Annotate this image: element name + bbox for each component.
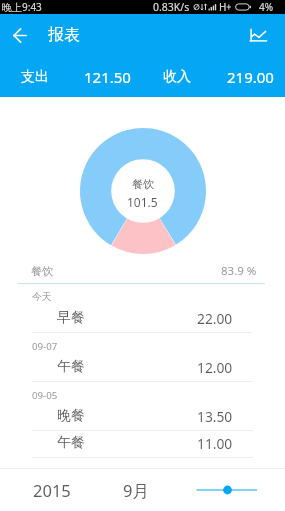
button[interactable]: 2015 [0,469,103,511]
staticText: 83.9 % [221,263,257,279]
button[interactable]: 09-07 [32,333,285,355]
staticText: 今天 [32,291,52,303]
button[interactable]: 支出 [0,56,142,97]
button[interactable]: 午餐 [0,355,285,382]
button[interactable]: Charts [230,14,285,56]
button[interactable]: 今天 [32,284,285,306]
button[interactable]: 晚餐 [0,404,285,431]
staticText: 早餐 [57,309,85,326]
button[interactable]: 收入 [142,56,285,97]
staticText: 219.00 [227,67,274,87]
button[interactable]: Adjust range [169,469,285,511]
button[interactable]: 9月 [103,469,169,511]
staticText: 9月 [123,479,149,502]
button[interactable]: 午餐 [0,431,285,458]
staticText: H [219,0,227,14]
staticText: 支出 [21,68,49,86]
staticText: 午餐 [57,358,85,375]
button[interactable]: 早餐 [0,306,285,333]
staticText: 晚上9:43 [2,0,42,14]
staticText: 午餐 [57,434,85,451]
button[interactable]: 09-05 [32,382,285,404]
staticText: 收入 [163,68,191,86]
button[interactable]: Back [0,14,39,56]
staticText: 22.00 [197,309,233,328]
staticText: 晚餐 [57,407,85,424]
staticText: 12.00 [197,358,233,377]
staticText: 09-05 [32,389,58,402]
staticText: 餐饮 [132,177,154,191]
staticText: 121.50 [84,67,131,87]
staticText: 餐饮 [31,264,53,278]
staticText: 0.83K/s [153,0,190,14]
staticText: 报表 [48,25,80,45]
staticText: 13.50 [197,407,233,426]
staticText: 11.00 [197,434,233,453]
button[interactable]: 餐饮 [0,258,285,284]
staticText: 101.5 [127,194,158,210]
staticText: 2015 [33,479,71,501]
staticText: 4% [259,0,274,14]
staticText: 09-07 [32,340,58,353]
